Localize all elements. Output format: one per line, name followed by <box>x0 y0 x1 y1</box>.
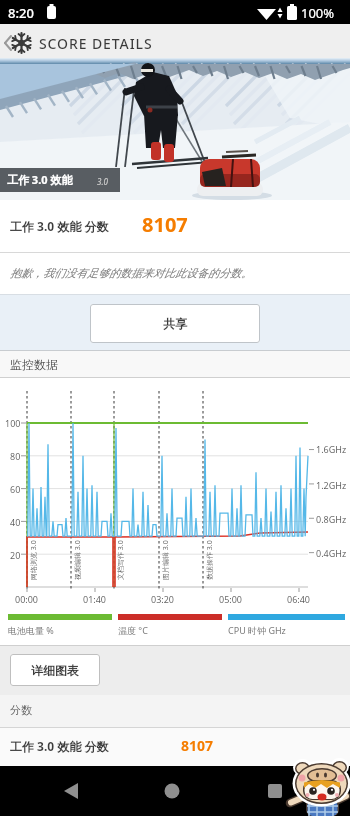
staticText: 01:40 <box>83 593 107 605</box>
staticText: 详细图表 <box>31 663 79 678</box>
staticText: 40 <box>10 516 21 528</box>
staticText: 0.8GHz <box>316 513 347 525</box>
staticText: 工作 3.0 效能 分数 <box>10 738 109 754</box>
staticText: CPU 时钟 GHz <box>228 624 286 636</box>
staticText: 监控数据 <box>10 357 58 372</box>
staticText: 数据操作 3.0 <box>205 540 215 580</box>
staticText: 8107 <box>181 736 214 755</box>
staticText: 抱歉，我们没有足够的数据来对比此设备的分数。 <box>10 266 252 280</box>
staticText: 1.2GHz <box>316 479 347 491</box>
staticText: 分数 <box>10 703 32 717</box>
staticText: 20 <box>10 549 21 561</box>
staticText: 8:20 <box>8 4 34 22</box>
staticText: SCORE DETAILS <box>39 34 153 53</box>
staticText: 共享 <box>163 316 187 331</box>
staticText: 电池电量 % <box>8 624 54 636</box>
staticText: 60 <box>10 483 21 495</box>
staticText: 8107 <box>142 211 188 238</box>
staticText: 03:20 <box>151 593 175 605</box>
staticText: 100 <box>5 417 21 429</box>
staticText: 100% <box>301 4 335 22</box>
staticText: 温度 °C <box>118 624 148 636</box>
staticText: 文档写作 3.0 <box>116 540 126 580</box>
staticText: 1.6GHz <box>316 443 347 455</box>
staticText: 图片编辑 3.0 <box>161 540 171 580</box>
staticText: 视频编辑 3.0 <box>73 540 83 580</box>
staticText: 06:40 <box>287 593 311 605</box>
staticText: 00:00 <box>15 593 39 605</box>
staticText: 80 <box>10 450 21 462</box>
staticText: 工作 3.0 效能 分数 <box>10 218 109 234</box>
staticText: 网络浏览 3.0 <box>29 540 39 580</box>
staticText: 0.4GHz <box>316 547 347 559</box>
staticText: 3.0 <box>97 176 108 187</box>
staticText: 05:00 <box>219 593 243 605</box>
staticText: 工作 3.0 效能 <box>7 172 73 187</box>
